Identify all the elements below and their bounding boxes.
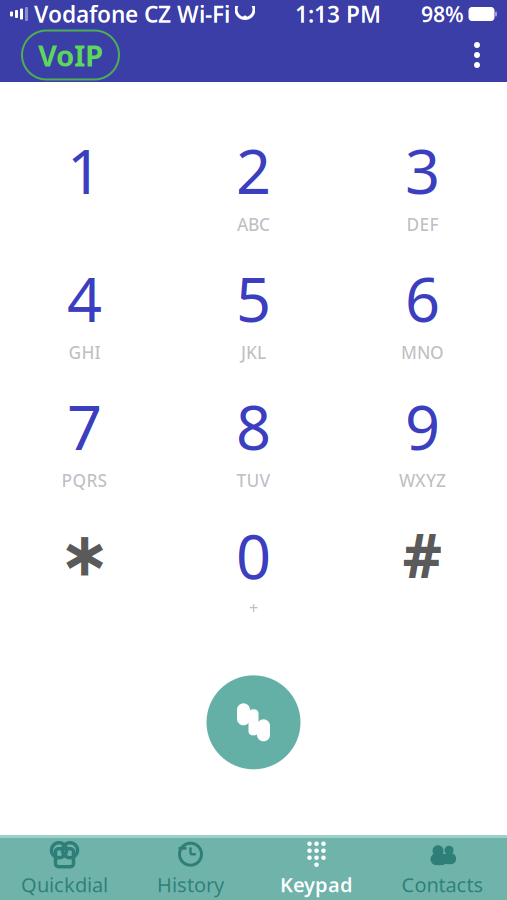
button[interactable]: 5 [169,268,338,354]
staticText: 2 [236,129,271,211]
staticText: # [402,513,442,595]
staticText: 7 [67,385,102,467]
button[interactable]: Contacts [379,838,505,900]
staticText: ∗ [59,519,110,589]
button[interactable]: 4 [0,268,169,354]
staticText: JKL [241,341,266,364]
button[interactable]: 0 [169,524,338,610]
staticText: 3 [405,129,440,211]
staticText: 0 [236,515,271,596]
staticText: History [157,871,224,898]
button[interactable]: Keypad [253,838,379,900]
button[interactable]: 1 [0,140,169,226]
staticText: 8 [236,385,271,467]
staticText: TUV [236,469,270,492]
button[interactable]: 6 [338,268,507,354]
staticText: 1:13 PM [295,0,381,29]
button[interactable]: More options [455,33,499,77]
staticText: WXYZ [399,469,446,492]
staticText: Vodafone CZ Wi-Fi [34,0,230,29]
button[interactable]: 3 [338,140,507,226]
staticText: GHI [68,341,100,364]
button[interactable]: 7 [0,396,169,482]
button[interactable]: Star [0,524,169,610]
button[interactable]: Call [198,667,308,777]
staticText: PQRS [61,469,107,492]
staticText: 4 [67,257,102,339]
button[interactable]: Pound [338,524,507,610]
staticText: MNO [401,341,444,364]
staticText: Keypad [280,871,353,898]
staticText: 1 [67,129,102,211]
button[interactable]: 8 [169,396,338,482]
staticText: DEF [406,213,438,236]
staticText: Contacts [401,871,483,898]
button[interactable]: VoIP [22,30,119,79]
staticText: ABC [237,213,270,236]
button[interactable]: 9 [338,396,507,482]
button[interactable]: History [127,838,253,900]
staticText: Quickdial [21,871,108,898]
button[interactable]: Quickdial [1,838,127,900]
staticText: 9 [405,385,440,467]
staticText: 5 [236,257,271,339]
button[interactable]: 2 [169,140,338,226]
staticText: + [249,597,258,618]
staticText: VoIP [38,35,103,74]
staticText: 6 [405,257,440,339]
staticText: 98% [421,0,464,28]
